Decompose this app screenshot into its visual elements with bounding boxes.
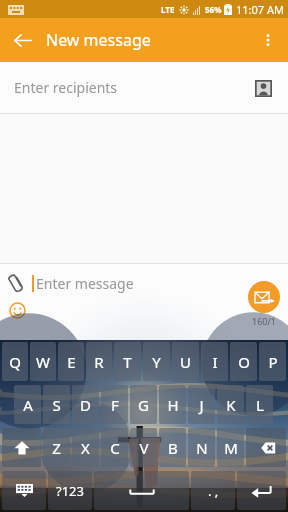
button[interactable]: Enter [237, 471, 286, 510]
staticText: L [256, 395, 264, 415]
button[interactable]: U [172, 342, 199, 381]
staticText: G [138, 395, 149, 415]
staticText: ?123 [56, 482, 84, 500]
staticText: U [180, 352, 191, 372]
staticText: F [111, 395, 119, 415]
button[interactable]: Attach [3, 269, 31, 297]
button[interactable]: E [58, 342, 84, 381]
staticText: Y [152, 352, 161, 372]
button[interactable]: X [72, 428, 99, 467]
button[interactable]: R [86, 342, 112, 381]
button[interactable]: F [101, 385, 128, 424]
staticText: A [23, 395, 33, 415]
button[interactable]: Symbols [48, 471, 92, 510]
staticText: N [196, 438, 208, 458]
button[interactable]: More options [250, 22, 286, 58]
button[interactable]: Q [2, 342, 28, 381]
button[interactable]: Add recipient from contacts [248, 73, 278, 103]
staticText: B [168, 438, 178, 458]
staticText: J [199, 395, 204, 415]
staticText: 160/1 [252, 315, 276, 327]
button[interactable]: I [201, 342, 228, 381]
staticText: E [67, 352, 76, 372]
staticText: X [81, 438, 90, 458]
button[interactable]: Keyboard settings [2, 471, 46, 510]
button[interactable]: Insert emoji [4, 297, 30, 323]
staticText: Enter recipients [14, 78, 118, 97]
staticText: LTE [161, 4, 175, 15]
button[interactable]: C [101, 428, 128, 467]
staticText: T [123, 352, 132, 372]
button[interactable]: M [217, 428, 244, 467]
staticText: P [268, 352, 278, 372]
staticText: Enter message [36, 274, 134, 293]
button[interactable]: V [130, 428, 157, 467]
button[interactable]: O [230, 342, 257, 381]
staticText: K [226, 395, 236, 415]
button[interactable]: B [159, 428, 186, 467]
button[interactable]: Send message [248, 281, 280, 313]
button[interactable]: L [246, 385, 273, 424]
staticText: . , [208, 482, 219, 500]
staticText: V [139, 438, 149, 458]
button[interactable]: S [43, 385, 70, 424]
staticText: R [94, 352, 104, 372]
button[interactable]: Backspace [246, 428, 286, 467]
button[interactable]: H [159, 385, 186, 424]
staticText: S [52, 395, 61, 415]
button[interactable]: A [14, 385, 41, 424]
staticText: I [212, 352, 218, 372]
button[interactable]: Y [143, 342, 170, 381]
button[interactable]: W [30, 342, 56, 381]
staticText: New message [46, 29, 151, 51]
button[interactable]: Shift [2, 428, 41, 467]
button[interactable]: Space [94, 471, 189, 510]
staticText: M [224, 438, 238, 458]
staticText: 56% [205, 4, 222, 15]
button[interactable]: D [72, 385, 99, 424]
button[interactable]: G [130, 385, 157, 424]
button[interactable]: J [188, 385, 215, 424]
staticText: W [36, 352, 50, 372]
staticText: H [167, 395, 179, 415]
button[interactable]: K [217, 385, 244, 424]
button[interactable]: N [188, 428, 215, 467]
staticText: 11:07 AM [236, 2, 284, 17]
button[interactable]: T [114, 342, 141, 381]
button[interactable]: Period and comma [191, 471, 235, 510]
staticText: C [110, 438, 120, 458]
staticText: Z [52, 438, 61, 458]
staticText: O [238, 352, 250, 372]
button[interactable]: Back [4, 22, 40, 58]
staticText: Q [9, 352, 21, 372]
staticText: D [80, 395, 91, 415]
button[interactable]: P [259, 342, 286, 381]
button[interactable]: Z [43, 428, 70, 467]
